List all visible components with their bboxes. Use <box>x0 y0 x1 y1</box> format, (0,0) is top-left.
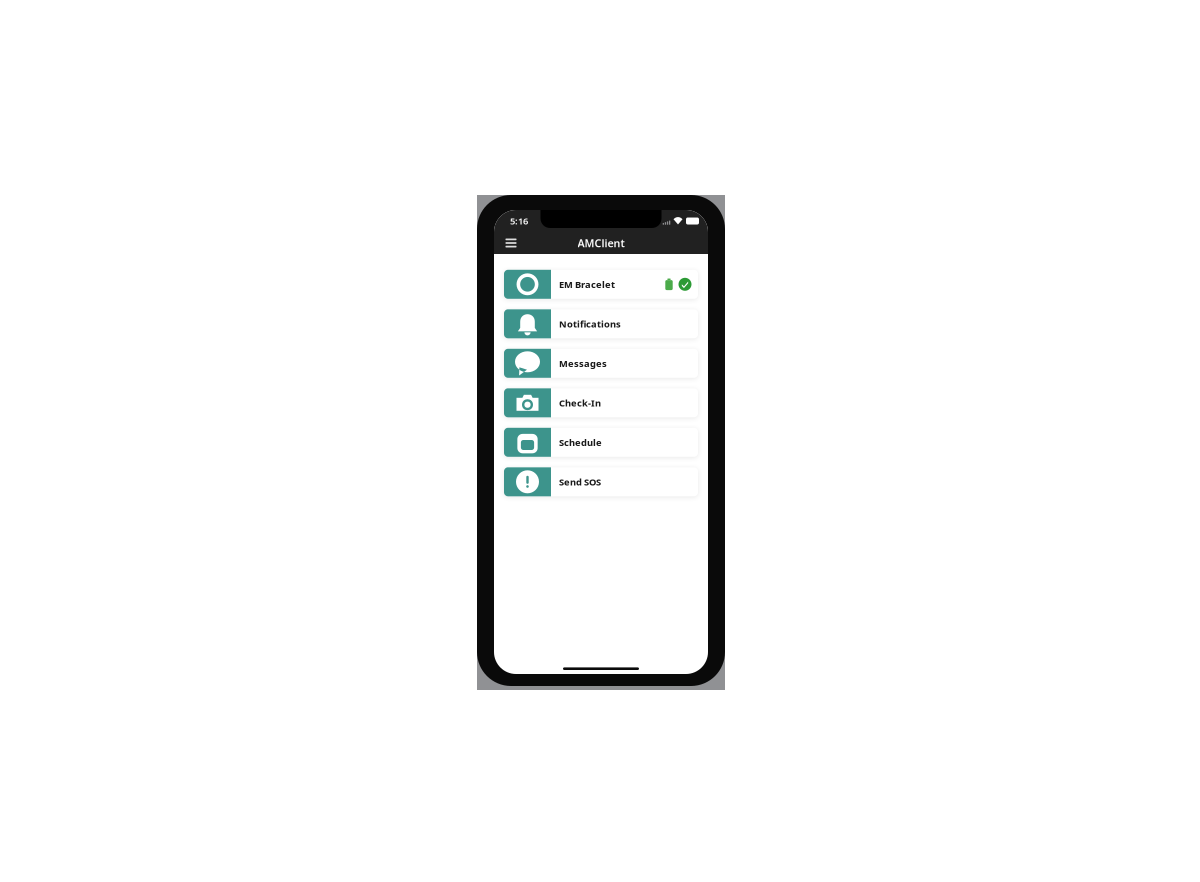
button[interactable]: EM Bracelet <box>504 270 698 299</box>
button[interactable]: Schedule <box>504 428 698 457</box>
staticText: 5:16 <box>510 215 528 227</box>
staticText: Messages <box>559 357 607 369</box>
button[interactable]: Notifications <box>504 309 698 338</box>
button[interactable]: Messages <box>504 349 698 378</box>
staticText: Notifications <box>559 318 621 330</box>
staticText: EM Bracelet <box>559 278 615 290</box>
button[interactable]: Menu <box>500 232 522 254</box>
button[interactable]: Send SOS <box>504 467 698 496</box>
staticText: Send SOS <box>559 476 601 488</box>
staticText: Check-In <box>559 397 601 409</box>
staticText: AMClient <box>577 236 624 250</box>
button[interactable]: Check-In <box>504 388 698 417</box>
staticText: Schedule <box>559 436 602 448</box>
